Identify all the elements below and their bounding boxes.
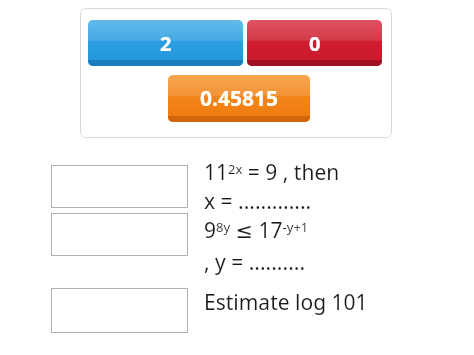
button[interactable]: 0 [247, 20, 382, 66]
staticText: , y = .......... [204, 248, 306, 277]
staticText: 98y ≤ 17-y+1 [204, 216, 309, 245]
button[interactable]: Answer drop area [51, 165, 188, 208]
staticText: 112x = 9 , then [204, 158, 340, 187]
staticText: 0 [309, 30, 321, 57]
button[interactable]: Answer drop area [51, 213, 188, 256]
staticText: 2 [160, 30, 172, 57]
button[interactable]: 0.45815 [168, 75, 310, 122]
staticText: Estimate log 101 [204, 288, 368, 317]
button[interactable]: 2 [88, 20, 243, 66]
staticText: 0.45815 [200, 84, 278, 113]
staticText: x = ............. [204, 187, 312, 216]
button[interactable]: Answer drop area [51, 288, 188, 333]
